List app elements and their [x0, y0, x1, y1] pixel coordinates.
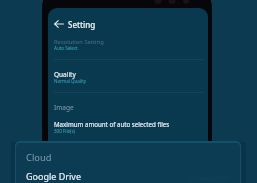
staticText: Resolution Setting — [54, 38, 104, 46]
staticText: 300 File(s) — [54, 128, 75, 134]
staticText: Google Drive — [26, 170, 81, 182]
button[interactable] — [49, 33, 207, 59]
button[interactable]: Back — [51, 16, 66, 31]
staticText: Auto Select — [54, 45, 78, 51]
staticText: Image — [54, 103, 74, 112]
staticText: Quality — [54, 70, 76, 79]
staticText: Maximum amount of auto selected files — [54, 120, 170, 128]
staticText: Cloud — [26, 151, 52, 164]
button[interactable] — [49, 60, 207, 92]
staticText: Setting — [68, 19, 96, 30]
button[interactable] — [16, 166, 240, 183]
staticText: Normal Quality — [54, 78, 87, 84]
button[interactable] — [49, 114, 207, 139]
button[interactable] — [49, 8, 207, 32]
